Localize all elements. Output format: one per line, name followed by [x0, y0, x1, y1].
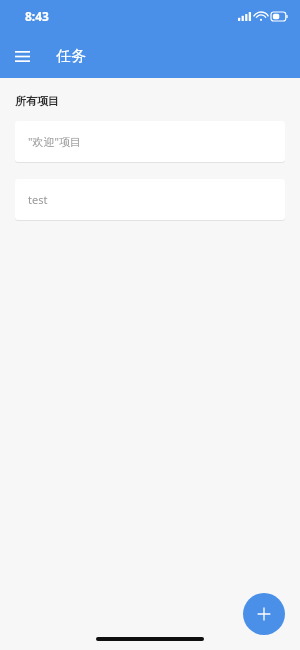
staticText: 任务	[56, 47, 86, 66]
button[interactable]: "欢迎"项目	[15, 121, 285, 162]
button[interactable]: Open navigation menu	[8, 42, 36, 70]
staticText: 所有项目	[15, 94, 59, 108]
staticText: "欢迎"项目	[28, 134, 81, 149]
button[interactable]: test	[15, 179, 285, 220]
staticText: test	[28, 192, 48, 207]
staticText: 8:43	[25, 8, 49, 24]
button[interactable]: Add new item	[243, 593, 285, 635]
